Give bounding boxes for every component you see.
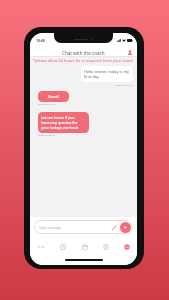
staticText: Chat with the coach (62, 50, 105, 56)
button[interactable]: Type message (34, 220, 133, 234)
button[interactable]: Chat (116, 236, 137, 253)
staticText: Today 10:47 AM (38, 103, 55, 106)
staticText: Type message (39, 225, 111, 229)
staticText: Today 10:48 AM (38, 134, 55, 137)
button[interactable]: Progress (52, 236, 74, 253)
staticText: Hello trainer, today is my first day (84, 69, 130, 79)
button[interactable]: Send (120, 222, 131, 233)
button[interactable]: Attach (111, 224, 118, 231)
button[interactable]: Schedule (74, 236, 95, 253)
staticText: Let me know if you have any queries for … (41, 115, 78, 130)
staticText: *please allow 24 hours for a response fr… (33, 58, 133, 63)
button[interactable]: Profile (125, 48, 134, 57)
staticText: Great! (48, 94, 59, 99)
button[interactable]: Nutrition (95, 236, 116, 253)
staticText: 10:48 (36, 38, 45, 43)
staticText: Today 10:47 AM (116, 84, 133, 87)
button[interactable]: Workouts (30, 236, 52, 253)
